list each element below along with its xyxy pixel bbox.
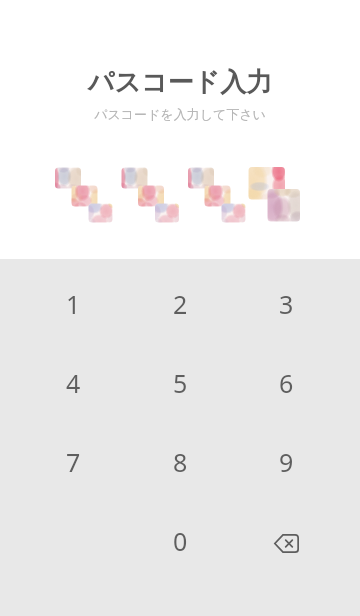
button[interactable]: 3 — [233, 264, 339, 343]
staticText: 7 — [66, 445, 81, 479]
staticText: 2 — [173, 287, 188, 321]
button[interactable]: 6 — [233, 343, 339, 422]
button[interactable]: 7 — [20, 422, 127, 501]
staticText: 8 — [173, 445, 188, 479]
button[interactable]: 2 — [127, 264, 233, 343]
button[interactable]: Backspace — [233, 501, 339, 580]
staticText: 0 — [173, 524, 188, 558]
staticText: 1 — [66, 287, 81, 321]
staticText: 9 — [279, 445, 294, 479]
staticText: 6 — [279, 366, 294, 400]
button[interactable]: 8 — [127, 422, 233, 501]
button[interactable]: 4 — [20, 343, 127, 422]
button[interactable]: 1 — [20, 264, 127, 343]
staticText: パスコードを入力して下さい — [0, 106, 360, 122]
button[interactable]: 5 — [127, 343, 233, 422]
other: Backspace — [274, 534, 299, 553]
staticText: 5 — [173, 366, 188, 400]
staticText: 4 — [66, 366, 81, 400]
staticText: パスコード入力 — [0, 66, 360, 99]
button[interactable]: 0 — [127, 501, 233, 580]
button[interactable]: 9 — [233, 422, 339, 501]
staticText: 3 — [279, 287, 294, 321]
